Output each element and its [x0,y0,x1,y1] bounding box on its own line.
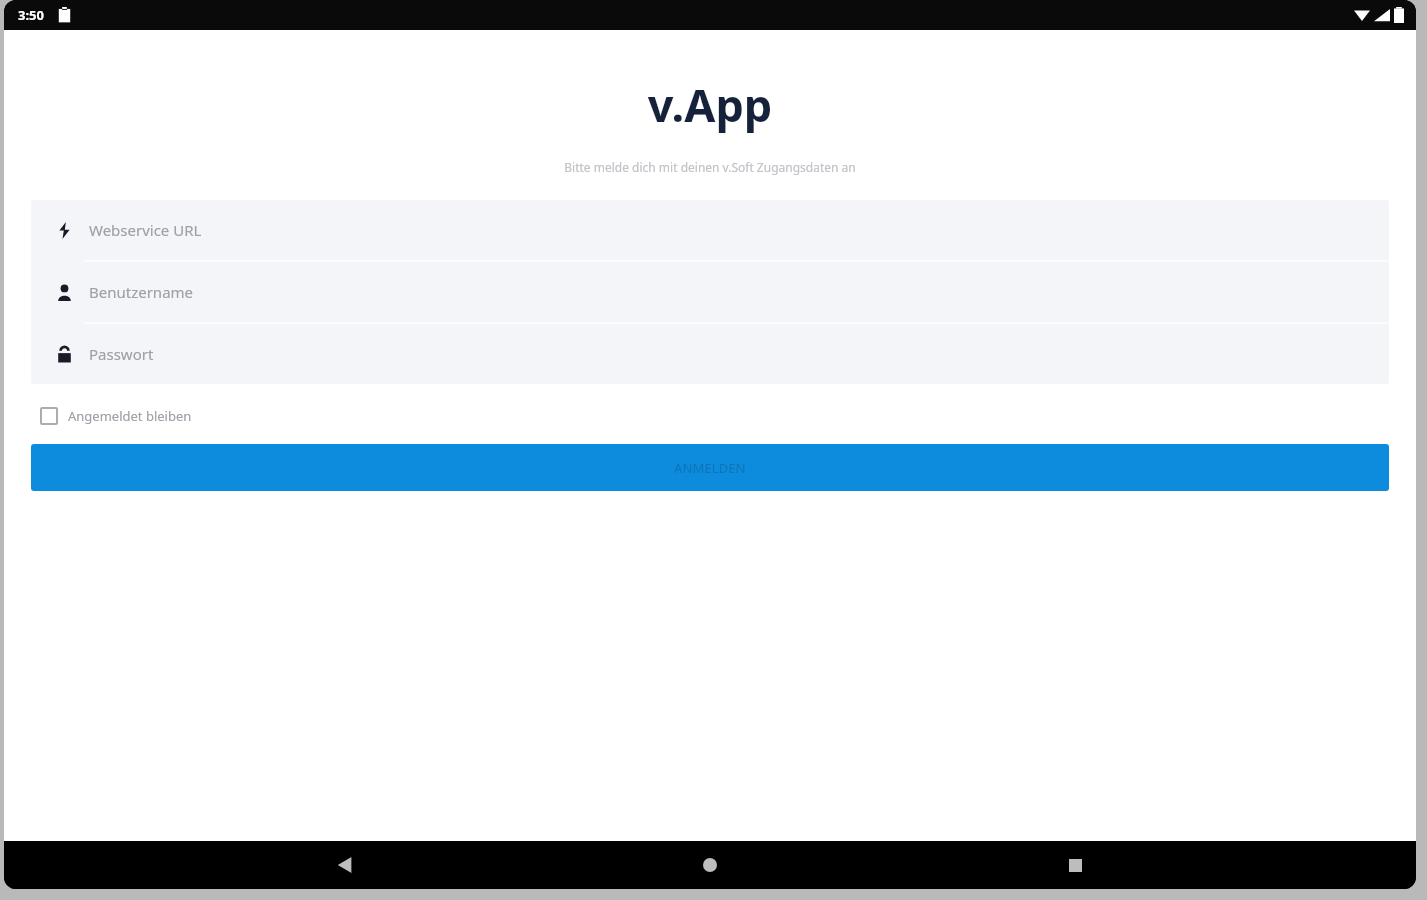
staticText: ANMELDEN [674,459,746,477]
button[interactable]: Back [321,841,369,889]
button[interactable]: Angemeldet bleiben [36,401,196,431]
button[interactable]: Benutzername [31,262,1389,322]
staticText: Angemeldet bleiben [68,407,192,425]
staticText: Benutzername [89,282,194,302]
button[interactable]: Recent apps [1051,841,1099,889]
button[interactable]: Home [686,841,734,889]
staticText: Bitte melde dich mit deinen v.Soft Zugan… [4,159,1416,175]
staticText: Webservice URL [89,220,202,240]
staticText: 3:50 [18,6,44,24]
button[interactable]: Webservice URL [31,200,1389,260]
staticText: v.App [4,74,1416,135]
button[interactable]: Passwort [31,324,1389,384]
staticText: Passwort [89,344,154,364]
